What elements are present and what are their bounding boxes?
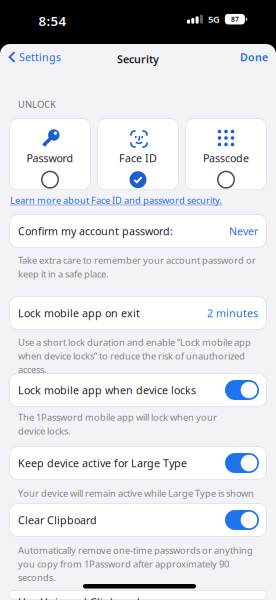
button[interactable]: Settings: [8, 50, 61, 64]
staticText: Learn more about Face ID and password se…: [10, 194, 222, 206]
button[interactable]: Confirm my account password:: [0, 214, 267, 248]
staticText: Security: [117, 52, 159, 66]
staticText: Face ID: [119, 151, 157, 165]
staticText: Take extra care to remember your account…: [18, 254, 256, 266]
staticText: device locks.: [18, 425, 71, 437]
staticText: Never: [229, 224, 258, 238]
staticText: Password: [26, 151, 73, 165]
staticText: Your device will remain active while Lar…: [18, 487, 254, 499]
staticText: Automatically remove one-time passwords …: [18, 544, 253, 556]
staticText: when device locks” to reduce the risk of…: [18, 350, 245, 362]
button[interactable]: Use Universal Clipboard: [0, 590, 267, 600]
button[interactable]: Lock mobile app on exit: [0, 296, 267, 330]
staticText: Settings: [19, 50, 61, 64]
staticText: Confirm my account password:: [18, 224, 173, 238]
button[interactable]: Done: [240, 50, 268, 64]
staticText: 5G: [208, 13, 220, 25]
button[interactable]: Face ID: [97, 118, 179, 190]
button[interactable]: Passcode: [185, 118, 267, 190]
staticText: keep it in a safe place.: [18, 268, 109, 280]
staticText: seconds.: [18, 571, 56, 584]
staticText: The 1Password mobile app will lock when …: [18, 411, 217, 423]
button[interactable]: Learn more about Face ID and password se…: [10, 194, 222, 206]
button[interactable]: Lock mobile app when device locks: [0, 373, 267, 407]
staticText: 87: [231, 15, 239, 24]
button[interactable]: Keep device active for Large Type: [0, 446, 267, 480]
staticText: Keep device active for Large Type: [18, 456, 187, 470]
staticText: 8:54: [38, 12, 66, 30]
staticText: Clear Clipboard: [18, 513, 97, 527]
staticText: 2 minutes: [207, 306, 258, 320]
staticText: Use Universal Clipboard: [18, 595, 140, 600]
staticText: Lock mobile app when device locks: [18, 383, 196, 397]
staticText: Done: [240, 50, 268, 64]
staticText: Use a short lock duration and enable “Lo…: [18, 336, 251, 348]
staticText: Lock mobile app on exit: [18, 306, 140, 320]
button[interactable]: Clear Clipboard: [0, 503, 267, 537]
staticText: Passcode: [203, 151, 249, 165]
button[interactable]: Password: [9, 118, 91, 190]
staticText: UNLOCK: [18, 98, 56, 110]
staticText: you copy from 1Password after approximat…: [18, 558, 229, 570]
staticText: access.: [18, 363, 47, 376]
